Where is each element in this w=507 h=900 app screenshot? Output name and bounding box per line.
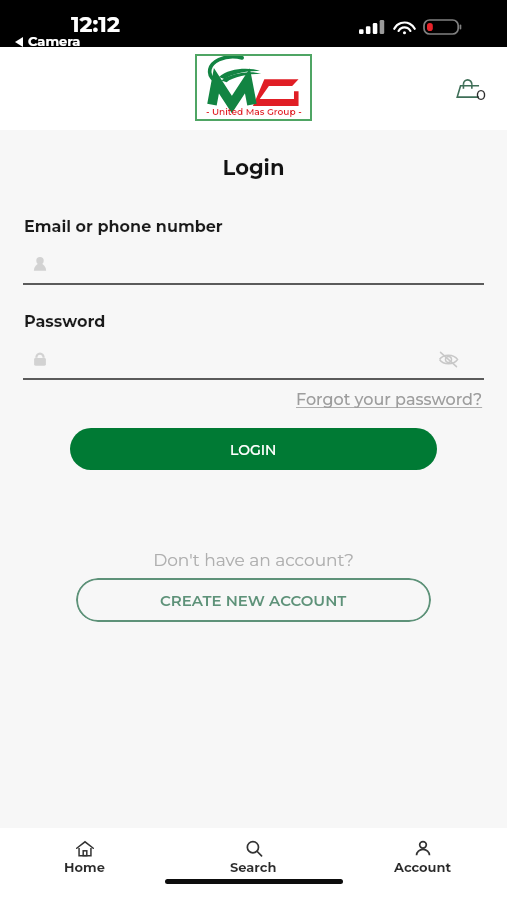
button[interactable]: Forgot your password?	[296, 390, 483, 410]
staticText: 12:12	[71, 11, 120, 38]
staticText: Home	[64, 859, 105, 875]
button[interactable]: Search	[169, 838, 338, 877]
staticText: CREATE NEW ACCOUNT	[160, 591, 347, 609]
staticText: Login	[0, 155, 507, 181]
staticText: Email or phone number	[24, 217, 223, 237]
staticText: Don't have an account?	[0, 550, 507, 571]
button[interactable]: LOGIN	[70, 428, 437, 470]
staticText: - United Mas Group -	[206, 106, 302, 117]
staticText: 0	[476, 85, 487, 103]
staticText: LOGIN	[230, 441, 277, 458]
button[interactable]: Shopping cart	[448, 72, 499, 107]
button[interactable]: CREATE NEW ACCOUNT	[76, 578, 431, 622]
button[interactable]: Account	[338, 838, 507, 877]
staticText: Account	[394, 859, 452, 875]
button[interactable]: Home	[0, 838, 169, 877]
staticText: Camera	[28, 33, 81, 49]
staticText: Search	[230, 859, 277, 875]
button[interactable]: Show password	[438, 349, 484, 370]
staticText: Password	[24, 312, 106, 332]
